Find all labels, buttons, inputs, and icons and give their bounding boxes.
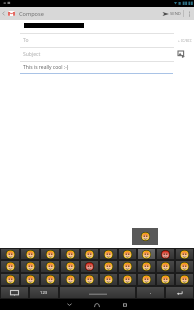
button[interactable]: Emoji xyxy=(61,261,79,272)
button[interactable]: SEND xyxy=(160,7,183,20)
button[interactable]: Emoji xyxy=(81,274,98,285)
button[interactable]: Emoji xyxy=(61,249,79,259)
button[interactable]: Emoji xyxy=(1,274,19,285)
button[interactable]: Emoji xyxy=(138,261,155,272)
button[interactable]: space xyxy=(60,287,135,298)
button[interactable]: Emoji xyxy=(176,249,193,259)
button[interactable]: Emoji xyxy=(21,261,39,272)
staticText: 123 xyxy=(40,290,48,296)
button[interactable]: 123 xyxy=(30,287,58,298)
button[interactable]: Back xyxy=(0,7,6,20)
button[interactable]: Emoji xyxy=(81,249,98,259)
button[interactable]: Emoji xyxy=(41,274,59,285)
button[interactable]: Emoji xyxy=(157,261,174,272)
button[interactable]: Emoji xyxy=(41,249,59,259)
button[interactable]: Emoji xyxy=(157,274,174,285)
button[interactable]: + CC/BCC xyxy=(178,39,192,43)
button[interactable]: Emoji xyxy=(61,274,79,285)
staticText: Compose xyxy=(19,10,44,18)
button[interactable]: Emoji xyxy=(21,274,39,285)
button[interactable]: Back xyxy=(55,299,83,310)
button[interactable]: Home xyxy=(83,299,111,310)
staticText: . xyxy=(150,289,152,296)
button[interactable]: Emoji xyxy=(176,274,193,285)
staticText: This is really cool :-) xyxy=(23,64,69,71)
button[interactable]: Emoji xyxy=(157,249,174,259)
button[interactable]: Emoji xyxy=(100,261,117,272)
staticText: Subject xyxy=(23,51,41,58)
button[interactable]: Emoji xyxy=(1,261,19,272)
staticText: To xyxy=(23,37,29,44)
button[interactable]: Recent apps xyxy=(111,299,139,310)
button[interactable]: Emoji xyxy=(119,274,136,285)
button[interactable]: Emoji xyxy=(119,261,136,272)
button[interactable]: Emoji xyxy=(21,249,39,259)
button[interactable]: More options xyxy=(184,7,194,20)
button[interactable]: kbd xyxy=(1,287,28,298)
button[interactable]: Emoji xyxy=(100,249,117,259)
button[interactable]: Attach picture xyxy=(177,50,186,59)
button[interactable]: Emoji xyxy=(138,274,155,285)
button[interactable]: Emoji xyxy=(81,261,98,272)
button[interactable]: enter xyxy=(166,287,193,298)
staticText: SEND xyxy=(170,11,181,17)
button[interactable]: Emoji xyxy=(138,249,155,259)
button[interactable]: . xyxy=(137,287,164,298)
button[interactable]: Emoji xyxy=(176,261,193,272)
button[interactable]: Emoji xyxy=(41,261,59,272)
button[interactable]: Emoji xyxy=(1,249,19,259)
button[interactable]: Emoji xyxy=(100,274,117,285)
button[interactable]: Emoji xyxy=(119,249,136,259)
